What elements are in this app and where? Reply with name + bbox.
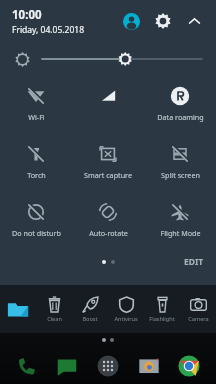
button[interactable]: CHROME xyxy=(175,352,203,380)
button[interactable]: Antivirus xyxy=(108,285,144,333)
button[interactable]: Boost xyxy=(72,285,108,333)
staticText: Flashlight xyxy=(149,315,175,323)
staticText: Flight Mode xyxy=(160,228,201,238)
button[interactable]: DRAWER xyxy=(94,352,122,380)
staticText: Auto-rotate xyxy=(89,228,128,238)
staticText: Wi-Fi xyxy=(28,112,45,122)
button[interactable]: Torch xyxy=(0,139,72,187)
staticText: 10:00 xyxy=(12,7,42,23)
staticText: Camera xyxy=(188,315,209,323)
button[interactable]: Split screen xyxy=(144,139,216,187)
staticText: Torch xyxy=(27,170,46,180)
button[interactable]: Flight Mode xyxy=(144,197,216,245)
staticText: Smart capture xyxy=(84,170,132,180)
button[interactable]: Wi-Fi xyxy=(0,81,72,129)
button[interactable]: MESSAGE xyxy=(53,352,81,380)
button[interactable]: Smart capture xyxy=(72,139,144,187)
staticText: Data roaming xyxy=(157,112,204,122)
staticText: Split screen xyxy=(161,170,200,180)
button[interactable]: Auto brightness xyxy=(12,49,32,69)
button[interactable]: PHONE xyxy=(13,352,41,380)
button[interactable]: Collapse xyxy=(182,9,206,33)
staticText: Antivirus xyxy=(114,315,138,323)
button[interactable]: Clean xyxy=(36,285,72,333)
button[interactable]: Auto-rotate xyxy=(72,197,144,245)
staticText: Clean xyxy=(47,315,62,323)
staticText: Do not disturb xyxy=(12,228,61,238)
button[interactable]: User xyxy=(118,8,144,34)
button[interactable]: PHOTOS xyxy=(135,352,163,380)
button[interactable]: Camera xyxy=(180,285,216,333)
button[interactable]: Settings xyxy=(150,8,176,34)
button[interactable]: Data roaming xyxy=(144,81,216,129)
staticText: Friday, 04.05.2018 xyxy=(12,24,85,36)
button[interactable]: Flashlight xyxy=(144,285,180,333)
button[interactable]: Mobile data xyxy=(72,81,144,129)
button[interactable]: Files xyxy=(0,285,36,333)
staticText: EDIT xyxy=(184,256,204,268)
staticText: Boost xyxy=(82,315,98,323)
button[interactable]: EDIT xyxy=(184,256,204,268)
button[interactable] xyxy=(42,47,202,71)
button[interactable]: Do not disturb xyxy=(0,197,72,245)
